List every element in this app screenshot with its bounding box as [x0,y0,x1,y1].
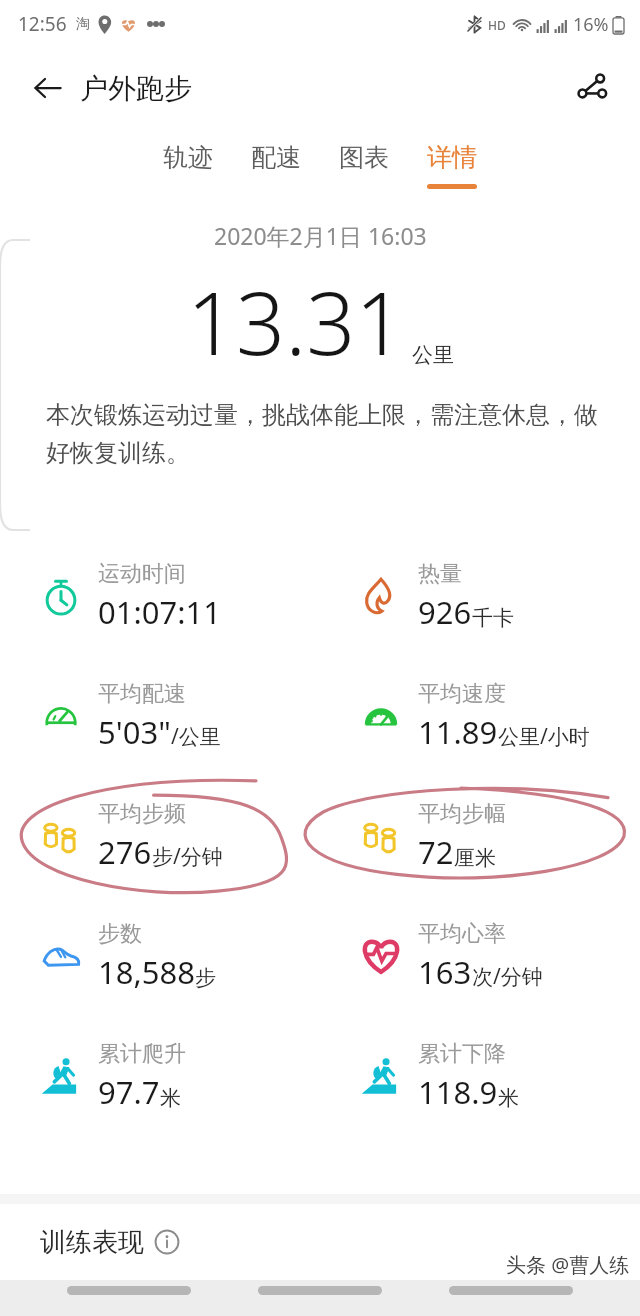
button[interactable]: 热量 [358,536,640,656]
staticText: 淘 [76,15,90,33]
button[interactable]: 步数 [38,896,320,1016]
staticText: 平均步幅 [418,800,506,828]
staticText: 步/分钟 [152,842,223,871]
staticText: 米 [160,1085,181,1111]
staticText: 轨迹 [163,142,213,173]
staticText: 训练表现 [40,1226,144,1259]
staticText: 13.31 [187,263,405,380]
staticText: 11.89 [418,711,498,753]
staticText: 2020年2月1日 16:03 [214,220,427,251]
button[interactable]: 轨迹 [144,128,232,206]
button[interactable]: 运动时间 [38,536,320,656]
staticText: 18,588 [98,951,195,993]
staticText: 累计爬升 [98,1040,186,1068]
button[interactable]: 导航按钮 [258,1286,382,1295]
staticText: 5'03" [98,711,171,753]
staticText: 276 [98,831,152,873]
staticText: 运动时间 [98,560,186,588]
staticText: 72 [418,831,454,873]
staticText: 米 [498,1085,519,1111]
staticText: 926 [418,591,472,633]
staticText: 累计下降 [418,1040,506,1068]
staticText: 平均配速 [98,680,186,708]
staticText: 详情 [427,142,477,173]
button[interactable]: 平均心率 [358,896,640,1016]
button[interactable]: 平均速度 [358,656,640,776]
staticText: 16% [573,12,609,37]
staticText: 图表 [339,142,389,173]
staticText: 163 [418,951,472,993]
button[interactable]: 累计爬升 [38,1016,320,1136]
staticText: 千卡 [472,605,514,631]
staticText: 厘米 [454,845,496,871]
staticText: 次/分钟 [472,962,543,991]
staticText: 公里 [412,342,454,368]
staticText: 步 [195,965,216,991]
staticText: 本次锻炼运动过量，挑战体能上限，需注意休息，做好恢复训练。 [46,400,600,469]
staticText: 118.9 [418,1071,498,1113]
button[interactable]: 训练表现 [0,1204,640,1280]
staticText: 01:07:11 [98,591,222,633]
staticText: 12:56 [18,11,67,37]
staticText: 配速 [251,142,301,173]
button[interactable]: 配速 [232,128,320,206]
button[interactable]: 累计下降 [358,1016,640,1136]
button[interactable]: 导航按钮 [67,1286,191,1295]
staticText: 步数 [98,920,142,948]
staticText: 平均步频 [98,800,186,828]
staticText: /公里 [171,722,221,751]
button[interactable]: 分享 [566,62,618,114]
button[interactable]: 返回 [26,66,70,110]
staticText: 97.7 [98,1071,160,1113]
button[interactable]: 图表 [320,128,408,206]
button[interactable]: 详情 [408,128,496,206]
staticText: 热量 [418,560,462,588]
button[interactable]: 导航按钮 [449,1286,573,1295]
button[interactable]: 平均步频 [38,776,320,896]
button[interactable]: 平均步幅 [358,776,640,896]
staticText: 平均心率 [418,920,506,948]
staticText: 公里/小时 [498,722,590,751]
staticText: 户外跑步 [80,71,192,106]
staticText: 平均速度 [418,680,506,708]
staticText: 头条 @曹人练 [506,1251,630,1278]
button[interactable]: 平均配速 [38,656,320,776]
staticText: HD [488,17,506,33]
